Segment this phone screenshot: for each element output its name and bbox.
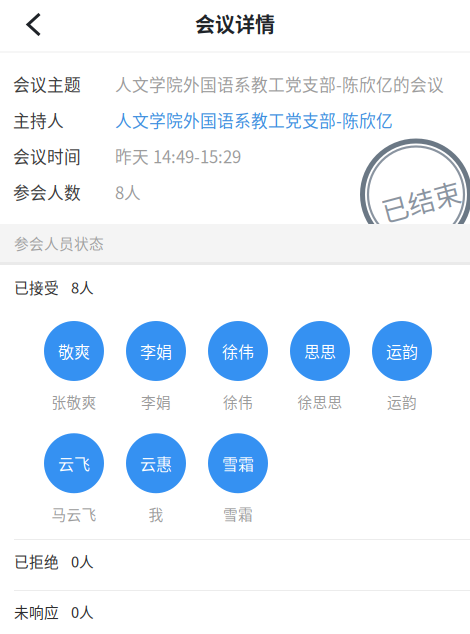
staticText: 运韵 — [386, 339, 418, 363]
staticText: 已接受 — [14, 276, 59, 298]
staticText: 已结束 — [380, 181, 461, 220]
button[interactable]: 运韵 — [361, 321, 443, 412]
staticText: 昨天 14:49-15:29 — [115, 144, 241, 168]
staticText: 0人 — [59, 601, 94, 622]
staticText: 思思 — [304, 339, 336, 363]
staticText: 会议详情 — [195, 9, 275, 38]
staticText: 人文学院外国语系教工党支部-陈欣亿的会议 — [115, 72, 444, 96]
staticText: 8人 — [115, 180, 141, 204]
staticText: 我 — [148, 503, 163, 524]
staticText: 主持人 — [13, 108, 64, 132]
staticText: 参会人数 — [13, 180, 81, 204]
button[interactable]: 云飞 — [33, 433, 115, 524]
staticText: 云惠 — [140, 452, 172, 475]
staticText: 云飞 — [58, 452, 90, 475]
staticText: 未响应 — [14, 601, 59, 622]
button[interactable]: 思思 — [279, 321, 361, 412]
button[interactable]: 雪霜 — [197, 433, 279, 524]
staticText: 李娟 — [141, 391, 171, 412]
staticText: 运韵 — [387, 391, 417, 412]
staticText: 徐思思 — [297, 391, 342, 412]
staticText: 会议时间 — [13, 144, 81, 168]
staticText: 徐伟 — [222, 339, 254, 363]
staticText: 雪霜 — [222, 452, 254, 475]
staticText: 已拒绝 — [14, 550, 59, 572]
staticText: 会议主题 — [13, 72, 81, 96]
staticText: 徐伟 — [223, 391, 253, 412]
staticText: 敬爽 — [58, 339, 90, 363]
staticText: 8人 — [59, 276, 94, 298]
button[interactable]: Back — [0, 0, 64, 51]
staticText: 雪霜 — [223, 503, 253, 524]
staticText: 马云飞 — [51, 503, 96, 524]
staticText: 参会人员状态 — [14, 232, 104, 254]
button[interactable]: 徐伟 — [197, 321, 279, 412]
staticText: 0人 — [59, 550, 94, 572]
staticText: 人文学院外国语系教工党支部-陈欣亿 — [115, 108, 393, 132]
staticText: 李娟 — [140, 339, 172, 363]
button[interactable]: 云惠 — [115, 433, 197, 524]
staticText: 张敬爽 — [51, 391, 96, 412]
button[interactable]: 李娟 — [115, 321, 197, 412]
button[interactable]: 敬爽 — [33, 321, 115, 412]
